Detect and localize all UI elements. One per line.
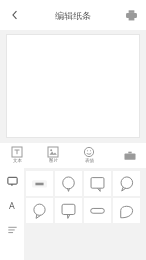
button[interactable]: Lines [2, 219, 22, 239]
button[interactable]: Shape [26, 198, 53, 223]
staticText: 文本 [13, 158, 22, 164]
staticText: 编辑纸条 [55, 10, 91, 21]
staticText: 图片 [49, 158, 58, 164]
button[interactable]: Shape [55, 171, 82, 196]
staticText: A [9, 199, 15, 211]
button[interactable]: Shapes [2, 171, 22, 191]
button[interactable]: Shape [55, 198, 82, 223]
button[interactable] [6, 34, 140, 138]
button[interactable]: Print [116, 0, 146, 30]
button[interactable]: Templates [119, 145, 141, 167]
button[interactable]: 文本 [7, 147, 27, 164]
button[interactable]: A [2, 195, 22, 215]
button[interactable]: Back [0, 0, 30, 30]
button[interactable]: Shape [113, 198, 140, 223]
button[interactable]: 表情 [79, 147, 99, 164]
button[interactable]: Shape [84, 198, 111, 223]
button[interactable]: Shape [84, 171, 111, 196]
button[interactable]: Shape [113, 171, 140, 196]
button[interactable]: 图片 [43, 147, 63, 164]
staticText: 表情 [85, 158, 94, 164]
button[interactable]: Shape [26, 171, 53, 196]
